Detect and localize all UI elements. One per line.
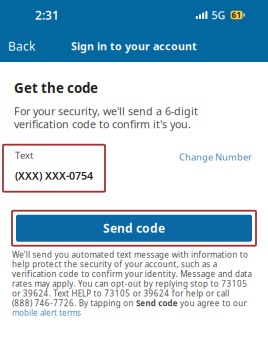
staticText: 5G (212, 8, 226, 22)
staticText: 2:31 (35, 7, 59, 23)
staticText: Get the code (14, 79, 98, 97)
staticText: verification code to confirm your identi… (12, 269, 251, 279)
staticText: Send code (136, 298, 178, 308)
staticText: or 39624. Text HELP to 73105 or 39624 fo… (12, 288, 229, 299)
staticText: We'll send you automated text message wi… (12, 249, 248, 260)
staticText: help protect the security of your accoun… (12, 259, 216, 269)
staticText: Text (15, 149, 33, 161)
staticText: (888) 746-7726. By tapping on (12, 298, 133, 308)
staticText: 61 (232, 10, 242, 20)
staticText: Change Number (179, 151, 252, 163)
staticText: Sign in to your account (71, 39, 197, 53)
staticText: For your security, we'll send a 6-digit (14, 104, 198, 118)
button[interactable]: Send code (16, 215, 252, 242)
button[interactable]: mobile alert terms (12, 308, 81, 318)
staticText: verification code to confirm it's you. (14, 117, 191, 131)
button[interactable]: Change Number (174, 146, 257, 168)
staticText: (XXX) XXX-0754 (15, 169, 93, 183)
staticText: mobile alert terms (12, 307, 81, 318)
staticText: you agree to our (180, 298, 246, 308)
staticText: rates may apply. You can opt-out by repl… (12, 278, 247, 289)
staticText: Send code (103, 220, 165, 236)
button[interactable]: Back (0, 31, 43, 61)
staticText: Back (8, 38, 35, 54)
